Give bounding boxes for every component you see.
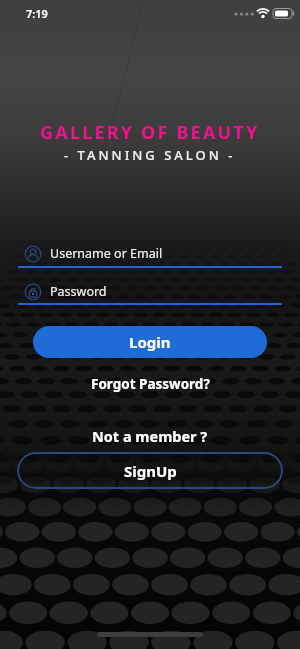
staticText: Not a member ?: [92, 426, 208, 446]
button[interactable]: Forgot Password?: [91, 375, 210, 393]
staticText: - TANNING SALON -: [64, 146, 236, 164]
staticText: Login: [129, 332, 171, 352]
staticText: Password: [50, 283, 107, 300]
staticText: Username or Email: [50, 245, 163, 262]
button[interactable]: Login: [33, 326, 267, 358]
staticText: 7:19: [26, 6, 48, 21]
staticText: GALLERY OF BEAUTY: [40, 120, 260, 145]
button[interactable]: SignUp: [17, 452, 283, 489]
staticText: SignUp: [124, 461, 177, 481]
button[interactable]: Password: [18, 279, 282, 304]
button[interactable]: Username or Email: [18, 241, 282, 266]
